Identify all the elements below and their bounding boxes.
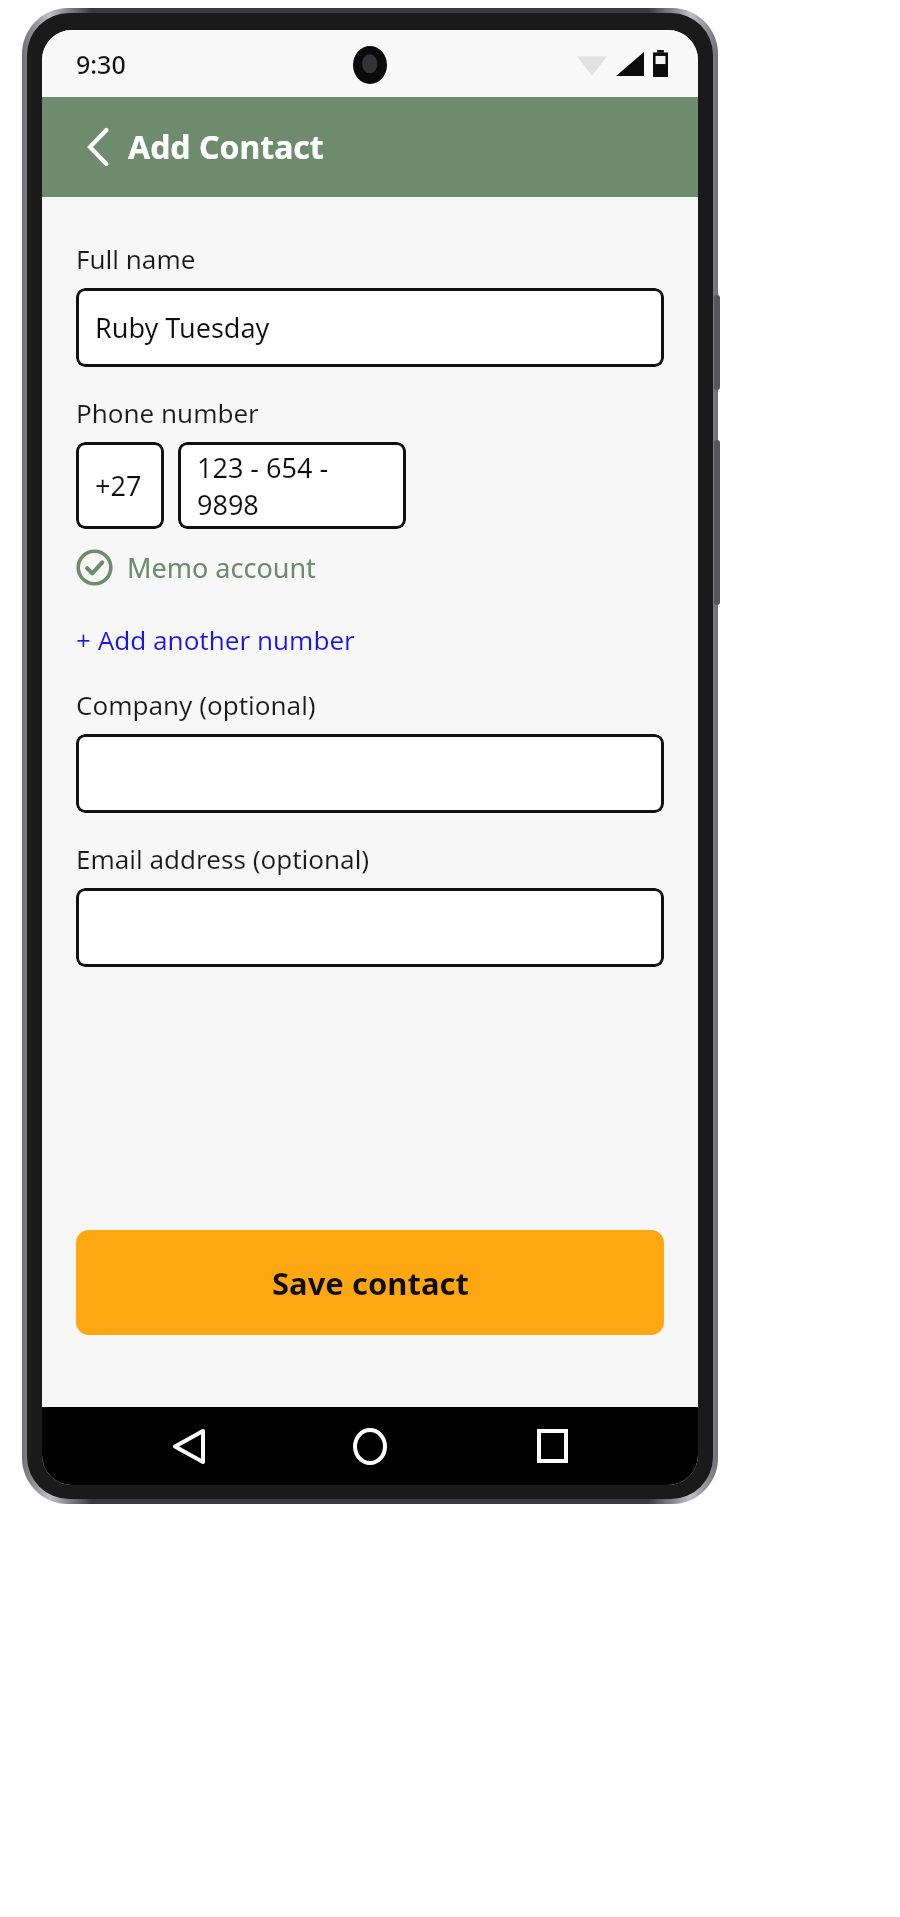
button[interactable] (76, 888, 664, 967)
staticText: + Add another number (76, 622, 355, 657)
staticText: Full name (76, 241, 196, 276)
button[interactable]: Home (335, 1411, 405, 1481)
button[interactable]: Memo account (76, 545, 316, 590)
staticText: Company (optional) (76, 687, 316, 722)
staticText: Phone number (76, 395, 259, 430)
button[interactable]: Recent apps (517, 1411, 587, 1481)
button[interactable] (76, 734, 664, 813)
button[interactable]: Save contact (76, 1230, 664, 1335)
staticText: Memo account (127, 549, 316, 586)
staticText: Ruby Tuesday (95, 309, 270, 346)
button[interactable]: Back (76, 125, 120, 169)
button[interactable]: Ruby Tuesday (76, 288, 664, 367)
button[interactable]: +27 (76, 442, 164, 529)
staticText: Add Contact (128, 125, 324, 169)
staticText: Save contact (272, 1262, 469, 1304)
staticText: Email address (optional) (76, 841, 370, 876)
staticText: +27 (95, 467, 142, 504)
button[interactable]: Back (154, 1411, 224, 1481)
staticText: 9:30 (76, 47, 126, 81)
staticText: 123 - 654 - 9898 (197, 449, 387, 523)
button[interactable]: + Add another number (76, 620, 355, 659)
button[interactable]: 123 - 654 - 9898 (178, 442, 406, 529)
